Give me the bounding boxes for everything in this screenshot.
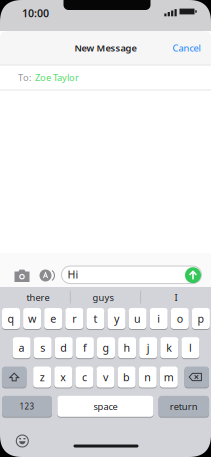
button[interactable]: space [57, 396, 153, 417]
staticText: Hi [67, 267, 78, 281]
staticText: v [103, 370, 108, 384]
button[interactable]: w [23, 308, 41, 329]
staticText: o [177, 311, 183, 326]
staticText: r [72, 311, 76, 326]
staticText: e [50, 311, 56, 326]
staticText: p [197, 311, 204, 326]
staticText: x [60, 370, 66, 384]
staticText: I [174, 291, 177, 304]
button[interactable]: i [150, 308, 168, 329]
button[interactable]: b [118, 366, 136, 387]
button[interactable]: Shift [2, 366, 26, 387]
staticText: z [40, 370, 45, 384]
button[interactable]: m [160, 366, 178, 387]
staticText: return [170, 400, 198, 412]
staticText: guys [92, 291, 113, 304]
staticText: Cancel [172, 42, 200, 54]
staticText: j [147, 341, 150, 355]
button[interactable]: Emoji [15, 434, 29, 448]
button[interactable]: s [34, 337, 52, 358]
staticText: m [164, 370, 174, 384]
staticText: a [19, 341, 25, 355]
button[interactable]: j [139, 337, 157, 358]
button[interactable]: Delete [184, 366, 209, 387]
button[interactable]: 123 [2, 396, 52, 417]
button[interactable]: t [86, 308, 104, 329]
button[interactable]: c [75, 366, 93, 387]
button[interactable]: return [159, 396, 209, 417]
staticText: there [26, 291, 49, 304]
staticText: t [93, 311, 97, 326]
staticText: y [114, 311, 119, 326]
button[interactable]: z [33, 366, 51, 387]
button[interactable]: r [65, 308, 83, 329]
staticText: d [60, 341, 67, 355]
button[interactable]: Apps [38, 268, 52, 282]
staticText: h [124, 341, 131, 355]
button[interactable]: n [139, 366, 157, 387]
staticText: f [83, 341, 87, 355]
staticText: k [166, 341, 172, 355]
button[interactable]: p [192, 308, 210, 329]
button[interactable]: a [13, 337, 31, 358]
staticText: u [134, 311, 141, 326]
button[interactable]: To: [0, 65, 211, 90]
button[interactable]: I [143, 287, 209, 307]
button[interactable]: Send [185, 267, 201, 283]
button[interactable]: d [55, 337, 73, 358]
button[interactable]: u [129, 308, 147, 329]
staticText: space [93, 400, 117, 412]
staticText: 123 [19, 401, 34, 412]
button[interactable]: there [5, 287, 71, 307]
staticText: New Message [74, 42, 136, 54]
staticText: g [102, 341, 109, 355]
staticText: 10:00 [22, 6, 49, 20]
button[interactable]: h [118, 337, 136, 358]
staticText: c [82, 370, 87, 384]
button[interactable]: g [97, 337, 115, 358]
button[interactable]: y [107, 308, 125, 329]
button[interactable]: e [44, 308, 62, 329]
button[interactable]: Cancel [172, 42, 200, 54]
staticText: Zoe Taylor [35, 71, 79, 84]
button[interactable]: q [2, 308, 20, 329]
button[interactable]: l [181, 337, 199, 358]
button[interactable]: o [171, 308, 189, 329]
staticText: To: [18, 71, 32, 84]
staticText: i [157, 311, 160, 326]
staticText: s [40, 341, 45, 355]
staticText: w [28, 311, 36, 326]
staticText: n [144, 370, 151, 384]
button[interactable]: Camera [12, 268, 32, 284]
button[interactable]: k [160, 337, 178, 358]
staticText: q [7, 311, 14, 326]
staticText: b [123, 370, 130, 384]
button[interactable]: x [54, 366, 72, 387]
staticText: l [189, 341, 192, 355]
button[interactable]: guys [70, 287, 136, 307]
button[interactable]: v [96, 366, 114, 387]
button[interactable]: f [76, 337, 94, 358]
